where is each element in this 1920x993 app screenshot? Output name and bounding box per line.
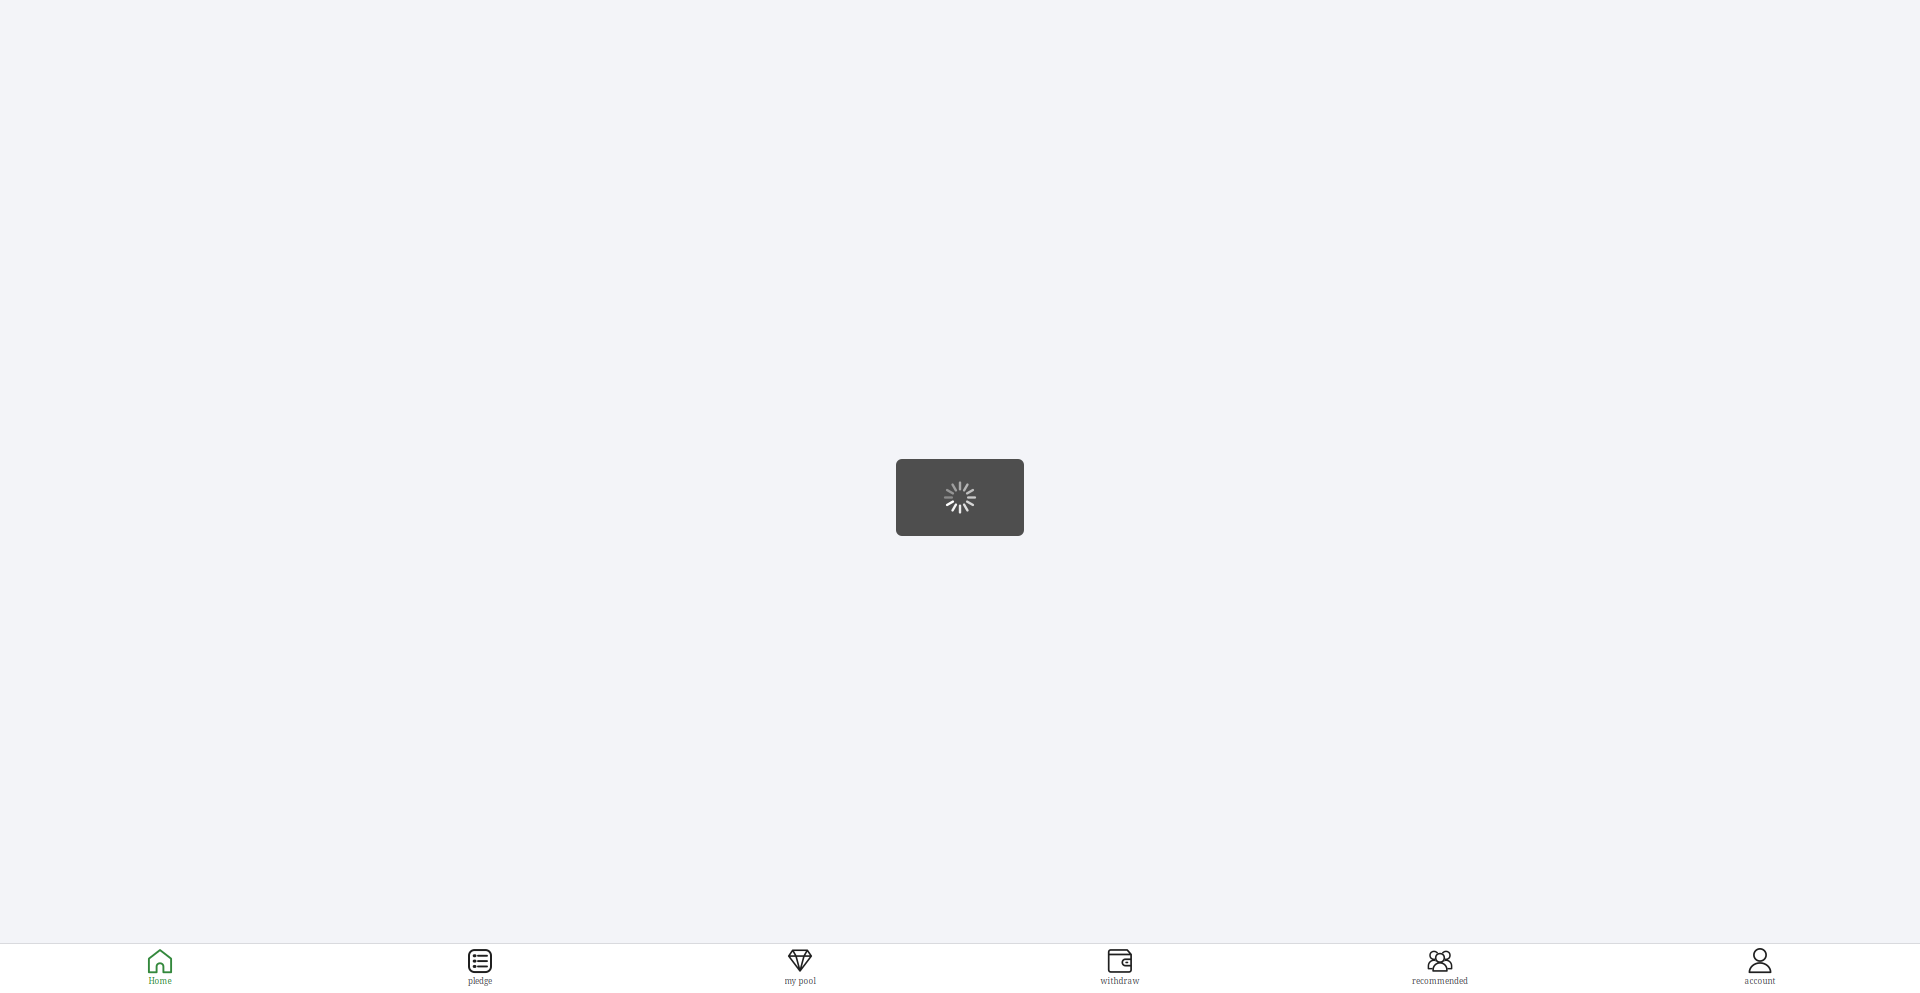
staticText: Home — [148, 976, 171, 986]
staticText: recommended — [1412, 976, 1468, 986]
staticText: pledge — [468, 976, 492, 986]
button[interactable]: pledge — [320, 945, 640, 991]
staticText: account — [1744, 976, 1775, 986]
staticText: withdraw — [1100, 976, 1139, 986]
button[interactable]: recommended — [1280, 945, 1600, 991]
button[interactable]: account — [1600, 945, 1920, 991]
button[interactable]: Home — [0, 945, 320, 991]
button[interactable]: withdraw — [960, 945, 1280, 991]
button[interactable]: my pool — [640, 945, 960, 991]
staticText: my pool — [784, 976, 815, 986]
